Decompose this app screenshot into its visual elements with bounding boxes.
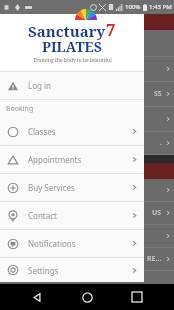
- staticText: Classes: [28, 126, 131, 137]
- button[interactable]: Recent apps: [124, 284, 150, 310]
- staticText: Settings: [28, 265, 131, 276]
- staticText: SS: [154, 89, 162, 99]
- button[interactable]: Back: [24, 284, 50, 310]
- staticText: 1:43 PM: [149, 3, 172, 11]
- button[interactable]: Contact: [0, 202, 144, 229]
- button[interactable]: Buy Services: [0, 174, 144, 201]
- staticText: Log in: [28, 80, 138, 91]
- button[interactable]: Home: [74, 284, 100, 310]
- staticText: Booking: [6, 104, 34, 114]
- staticText: Notifications: [28, 238, 131, 249]
- staticText: Contact: [28, 210, 131, 221]
- staticText: PILATES: [42, 37, 102, 56]
- staticText: US: [152, 208, 162, 218]
- staticText: Buy Services: [28, 182, 131, 193]
- button[interactable]: Appointments: [0, 146, 144, 173]
- staticText: 7: [106, 18, 116, 41]
- staticText: Appointments: [28, 154, 131, 165]
- button[interactable]: Classes: [0, 118, 144, 145]
- staticText: .: [160, 138, 162, 148]
- staticText: 100%: [125, 3, 141, 11]
- button[interactable]: Settings: [0, 258, 144, 282]
- staticText: Training the body to be beautiful: [33, 57, 112, 64]
- staticText: Sanctuary: [28, 21, 106, 41]
- button[interactable]: Log in: [0, 72, 144, 99]
- staticText: RE…: [147, 254, 162, 264]
- button[interactable]: Notifications: [0, 230, 144, 257]
